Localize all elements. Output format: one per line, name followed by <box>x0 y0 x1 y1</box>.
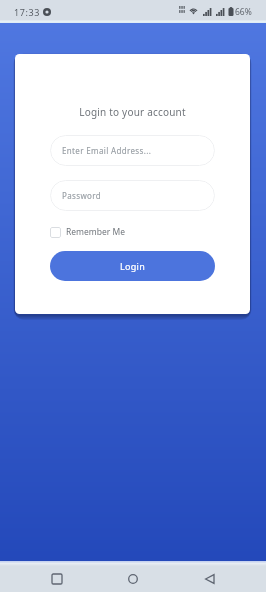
staticText: Password <box>62 190 101 201</box>
staticText: 17:33 <box>14 6 41 18</box>
button[interactable]: Home <box>113 566 153 592</box>
button[interactable]: Back <box>190 566 230 592</box>
button[interactable]: Enter Email Address... <box>50 135 215 166</box>
staticText: 66% <box>235 6 252 18</box>
staticText: Login <box>120 260 146 272</box>
staticText: Remember Me <box>66 226 126 238</box>
button[interactable]: Recent apps <box>37 566 77 592</box>
button[interactable]: Password <box>50 180 215 211</box>
staticText: Enter Email Address... <box>62 145 152 156</box>
button[interactable]: Remember Me <box>50 224 215 240</box>
button[interactable]: Login <box>50 251 215 281</box>
staticText: Login to your account <box>15 105 250 119</box>
